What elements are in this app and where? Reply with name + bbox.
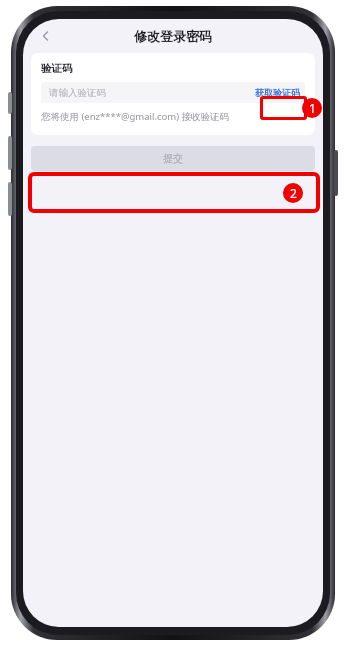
staticText: 您将使用 (enz****@gmail.com) 接收验证码	[41, 110, 230, 123]
staticText: 修改登录密码	[134, 28, 212, 44]
staticText: 提交	[163, 152, 183, 165]
staticText: 2	[290, 185, 297, 201]
button[interactable]: 获取验证码	[255, 87, 300, 98]
staticText: 获取验证码	[255, 87, 300, 98]
button[interactable]: 提交	[31, 146, 315, 171]
button[interactable]: Back	[29, 19, 63, 53]
staticText: 验证码	[41, 62, 73, 75]
staticText: 1	[309, 100, 316, 116]
staticText: 请输入验证码	[49, 87, 106, 99]
